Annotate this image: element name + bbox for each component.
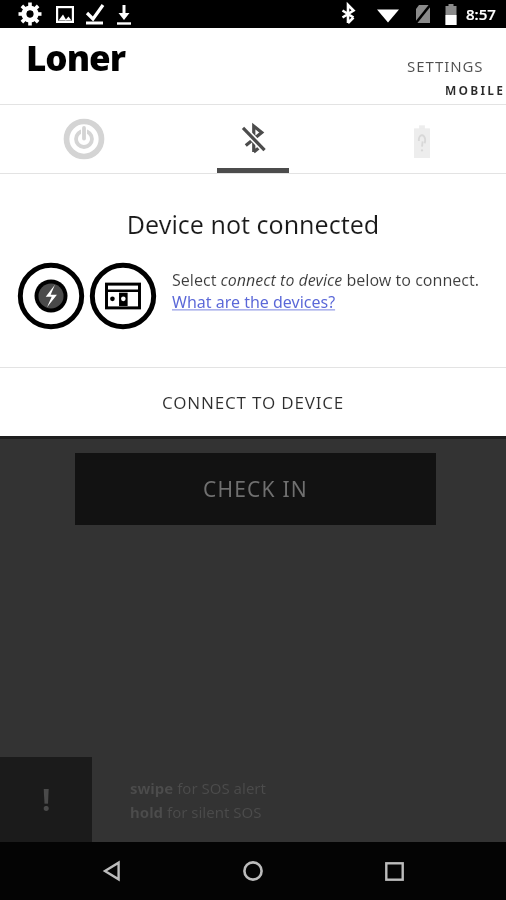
button[interactable]: Power status (0, 105, 168, 173)
staticText: swipe for SOS alert (130, 778, 266, 798)
button[interactable]: Back (83, 842, 141, 900)
staticText: Device not connected (0, 207, 506, 241)
button[interactable]: CONNECT TO DEVICE (0, 368, 506, 436)
button[interactable]: Recents (365, 842, 423, 900)
staticText: Select connect to device below to connec… (172, 269, 480, 291)
button[interactable]: CHECK IN (75, 453, 436, 525)
staticText: What are the devices? (172, 291, 336, 313)
button[interactable]: Bluetooth device (168, 105, 337, 173)
button[interactable]: SETTINGS (385, 42, 506, 90)
staticText: ! (42, 779, 51, 820)
staticText: hold for silent SOS (130, 802, 262, 822)
staticText: MOBILE (445, 82, 506, 98)
staticText: SETTINGS (407, 56, 484, 76)
staticText: Loner (26, 34, 126, 82)
staticText: CONNECT TO DEVICE (162, 391, 345, 414)
staticText: CHECK IN (203, 475, 308, 504)
button[interactable]: ! (0, 757, 506, 842)
staticText: 8:57 (466, 4, 496, 24)
button[interactable]: What are the devices? (172, 291, 336, 313)
button[interactable]: Home (224, 842, 282, 900)
button[interactable]: Battery unknown (337, 105, 506, 173)
